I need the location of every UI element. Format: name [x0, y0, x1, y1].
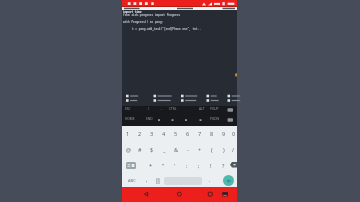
button[interactable]: +: [194, 141, 206, 157]
button[interactable]: PGUP: [210, 107, 219, 111]
button[interactable]: PGDN: [210, 117, 219, 121]
staticText: 9: [222, 130, 226, 137]
button[interactable]: !: [205, 157, 217, 173]
button[interactable]: 3: [146, 126, 158, 141]
staticText: 4: [162, 130, 166, 137]
button[interactable]: ABC: [128, 178, 136, 183]
button[interactable]: [140, 188, 152, 200]
staticText: (: [211, 146, 213, 153]
button[interactable]: 7: [194, 126, 206, 141]
staticText: 8: [210, 130, 214, 137]
staticText: from rich.progress import Progress: [123, 13, 181, 17]
button[interactable]: #: [134, 141, 146, 157]
staticText: $: [150, 146, 154, 153]
staticText: 0: [232, 130, 236, 137]
button[interactable]: ESC: [125, 107, 131, 111]
button[interactable]: ALT: [199, 107, 205, 111]
button[interactable]: $: [146, 141, 158, 157]
button[interactable]: 6: [182, 126, 194, 141]
staticText: 2: [138, 130, 142, 137]
button[interactable]: ": [157, 157, 169, 173]
staticText: &: [174, 146, 179, 153]
button[interactable]: ,: [146, 176, 148, 183]
button[interactable]: ?: [217, 157, 229, 173]
staticText: -: [187, 146, 189, 153]
staticText: #: [138, 146, 142, 153]
button[interactable]: ': [169, 157, 181, 173]
staticText: @: [126, 146, 131, 153]
button[interactable]: CTRL: [169, 107, 177, 111]
button[interactable]: ): [218, 141, 230, 157]
staticText: t = prog.add_task("[red]Phase one", tot.…: [132, 27, 201, 31]
staticText: ?: [222, 162, 225, 169]
button[interactable]: [173, 188, 185, 200]
staticText: !: [210, 162, 212, 169]
button[interactable]: (: [206, 141, 218, 157]
staticText: 7: [198, 130, 202, 137]
staticText: ): [223, 146, 225, 153]
button[interactable]: *: [145, 157, 157, 173]
button[interactable]: 2: [134, 126, 146, 141]
button[interactable]: -: [182, 141, 194, 157]
staticText: ;: [198, 162, 200, 169]
button[interactable]: 5: [170, 126, 182, 141]
button[interactable]: _: [158, 141, 170, 157]
staticText: 3: [150, 130, 154, 137]
staticText: ': [174, 162, 176, 169]
staticText: :: [186, 162, 188, 169]
staticText: *: [149, 162, 153, 169]
button[interactable]: .: [209, 176, 211, 183]
button[interactable]: [229, 157, 237, 173]
button[interactable]: /: [230, 141, 237, 157]
button[interactable]: &: [170, 141, 182, 157]
button[interactable]: 4: [158, 126, 170, 141]
staticText: 1: [126, 130, 130, 137]
button[interactable]: 0: [230, 126, 237, 141]
button[interactable]: ;: [193, 157, 205, 173]
staticText: ": [162, 162, 165, 169]
button[interactable]: :: [181, 157, 193, 173]
button[interactable]: [122, 157, 145, 173]
button[interactable]: [204, 188, 216, 200]
button[interactable]: [219, 188, 231, 200]
button[interactable]: 8: [206, 126, 218, 141]
button[interactable]: -: [161, 107, 163, 111]
button[interactable]: HOME: [125, 117, 135, 121]
button[interactable]: 1: [122, 126, 134, 141]
staticText: 6: [186, 130, 190, 137]
staticText: import time: [123, 10, 142, 14]
staticText: +: [198, 146, 202, 153]
staticText: /: [232, 146, 235, 153]
button[interactable]: END: [146, 117, 153, 121]
staticText: 5: [174, 130, 178, 137]
staticText: with Progress() as prog:: [123, 20, 164, 24]
button[interactable]: @: [122, 141, 134, 157]
button[interactable]: /: [148, 107, 150, 111]
staticText: _: [163, 146, 166, 153]
button[interactable]: [223, 175, 234, 186]
button[interactable]: 9: [218, 126, 230, 141]
